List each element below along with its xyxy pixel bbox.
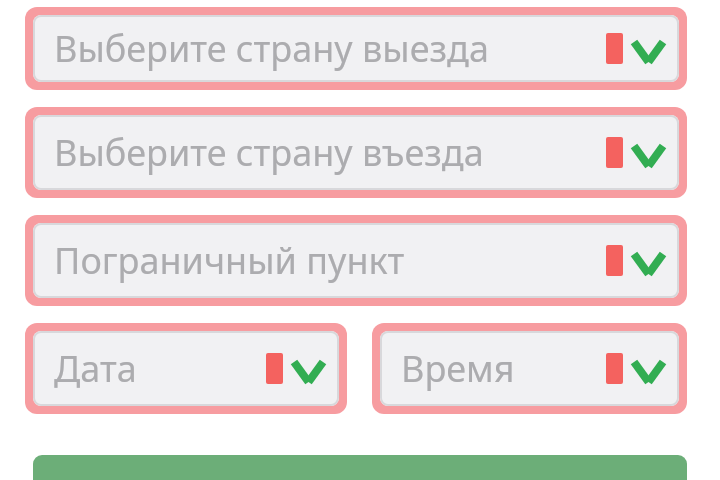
button[interactable]: Пограничный пункт <box>33 223 679 298</box>
staticText: Дата <box>54 344 266 393</box>
button[interactable]: Время <box>380 331 679 406</box>
button[interactable]: Выберите страну въезда <box>33 115 679 190</box>
button[interactable]: ДАЛЕЕ <box>33 455 687 480</box>
staticText: Выберите страну выезда <box>54 24 606 73</box>
button[interactable]: Выберите страну выезда <box>33 15 679 82</box>
button[interactable]: Дата <box>33 331 339 406</box>
staticText: Время <box>401 344 606 393</box>
staticText: Пограничный пункт <box>54 236 606 285</box>
staticText: Выберите страну въезда <box>54 128 606 177</box>
